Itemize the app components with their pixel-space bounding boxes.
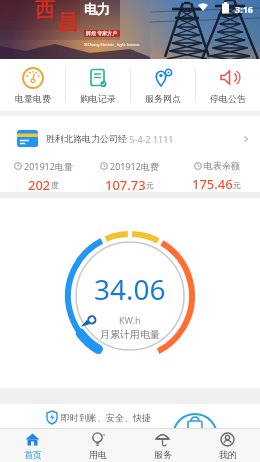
staticText: 3:16 [235, 3, 253, 15]
staticText: KW.h [119, 314, 141, 326]
button[interactable]: 我的 [195, 429, 260, 462]
button[interactable]: 停电公告 [196, 59, 260, 111]
staticText: 胜利北路电力公司经 [46, 133, 127, 144]
staticText: 元 [146, 180, 154, 190]
button[interactable]: 胜利北路电力公司经 [0, 121, 260, 156]
staticText: 电力 [84, 1, 110, 17]
staticText: 昌 [57, 9, 79, 37]
button[interactable]: 201912电费 [86, 160, 173, 192]
staticText: 175.46 [192, 175, 233, 192]
staticText: 201912电量 [24, 160, 73, 172]
staticText: 即时到账、安全、快捷 [61, 412, 151, 423]
staticText: 服务网点 [145, 93, 181, 104]
button[interactable]: 电表余额 [173, 160, 260, 192]
staticText: 停电公告 [210, 93, 246, 104]
staticText: 服务 [154, 449, 172, 460]
button[interactable]: 购电记录 [66, 59, 130, 111]
staticText: 辉煌 专家方户 [86, 30, 118, 37]
staticText: 34.06 [94, 270, 166, 308]
staticText: XiChang Electric , light homes [84, 42, 140, 47]
staticText: 元 [233, 180, 241, 190]
staticText: 107.73 [105, 176, 146, 192]
staticText: 202 [28, 176, 51, 192]
button[interactable]: 201912电量 [0, 160, 86, 192]
staticText: 我的 [219, 449, 237, 460]
staticText: 电表余额 [204, 160, 240, 171]
staticText: 用电 [89, 449, 107, 460]
staticText: 度 [51, 180, 59, 190]
button[interactable]: 首页 [0, 429, 65, 462]
button[interactable]: 服务网点 [131, 59, 195, 111]
button[interactable]: 电量电费 [0, 59, 65, 111]
button[interactable]: 用电 [65, 429, 130, 462]
staticText: 首页 [24, 449, 42, 460]
staticText: 5-4-2 1111 [127, 133, 174, 145]
button[interactable]: 服务 [130, 429, 195, 462]
staticText: 购电记录 [80, 93, 116, 104]
staticText: 月累计用电量 [100, 328, 160, 341]
staticText: 西 [35, 0, 55, 23]
button[interactable]: 即时到账、安全、快捷 [0, 404, 260, 428]
staticText: 电量电费 [15, 93, 51, 104]
staticText: 201912电费 [110, 160, 159, 172]
